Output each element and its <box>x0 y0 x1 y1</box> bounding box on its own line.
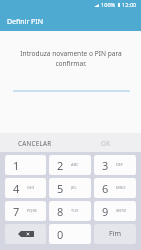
button[interactable]: 1 <box>5 155 46 175</box>
button[interactable]: 6 <box>94 178 136 198</box>
button[interactable]: 0 <box>49 224 91 244</box>
staticText: 0 <box>57 227 64 242</box>
staticText: 6 <box>102 181 109 196</box>
button[interactable]: 4 <box>5 178 46 198</box>
staticText: Definir PIN <box>7 17 44 27</box>
staticText: Introduza novamente o PIN para confirmar… <box>15 49 127 68</box>
button[interactable]: 9 <box>94 201 136 221</box>
button[interactable]: Backspace <box>5 224 46 244</box>
staticText: OK <box>101 139 111 148</box>
staticText: GHI <box>27 185 35 190</box>
button[interactable]: Fim <box>94 224 136 244</box>
staticText: 12:00 <box>122 1 137 9</box>
staticText: 100% <box>101 1 116 9</box>
staticText: MNO <box>116 185 126 190</box>
button[interactable]: 8 <box>49 201 91 221</box>
staticText: 7 <box>13 204 20 219</box>
staticText: JKL <box>71 185 77 190</box>
staticText: WXYZ <box>116 208 127 213</box>
button[interactable]: 5 <box>49 178 91 198</box>
staticText: CANCELAR <box>18 139 52 148</box>
staticText: 2 <box>57 158 64 173</box>
staticText: DEF <box>116 162 124 167</box>
button[interactable]: CANCELAR <box>0 133 70 152</box>
staticText: 9 <box>102 204 109 219</box>
button[interactable]: 2 <box>49 155 91 175</box>
staticText: 4 <box>13 181 20 196</box>
button[interactable]: 3 <box>94 155 136 175</box>
staticText: 5 <box>57 181 64 196</box>
staticText: 1 <box>13 158 20 173</box>
staticText: TUV <box>71 208 79 213</box>
button[interactable]: OK <box>70 133 141 152</box>
staticText: 8 <box>57 204 64 219</box>
staticText: 3 <box>102 158 109 173</box>
button[interactable]: 7 <box>5 201 46 221</box>
staticText: PQRS <box>27 208 37 213</box>
staticText: ABC <box>71 162 79 167</box>
staticText: Fim <box>109 229 121 239</box>
